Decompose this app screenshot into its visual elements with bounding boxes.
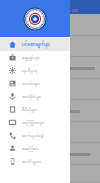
button[interactable]: အသံဖိုင်များ [0, 90, 70, 103]
staticText: ဈေးနှုန်းများ [22, 55, 41, 61]
button[interactable]: ပင်မစာမျက်နှာ [0, 38, 70, 51]
button[interactable]: အက်ပ်မျှဝေ [0, 155, 70, 168]
button[interactable]: Profile header [0, 0, 70, 37]
button[interactable]: သတင်းများ [0, 77, 70, 90]
staticText: သတင်းများ [22, 81, 41, 87]
staticText: အကြံပြုစာများ [22, 120, 45, 126]
button[interactable]: ဈေးနှုန်းများ [0, 51, 70, 64]
staticText: အကြောင်း [22, 146, 39, 152]
button[interactable]: အကြောင်း [0, 142, 70, 155]
staticText: ဗီဒီယိုများ [22, 107, 38, 113]
button[interactable]: အကြံပြုစာများ [0, 116, 70, 129]
staticText: အသံဖိုင်များ [22, 94, 42, 100]
button[interactable]: ဗီဒီယိုများ [0, 103, 70, 116]
button[interactable]: ဆက်သွယ်ရန် [0, 129, 70, 142]
button[interactable]: ရာသီဥတု [0, 64, 70, 77]
staticText: ရာသီဥတု [22, 68, 38, 74]
staticText: ပင်မစာမျက်နှာ [22, 40, 50, 50]
staticText: ဆက်သွယ်ရန် [22, 133, 44, 139]
staticText: အက်ပ်မျှဝေ [22, 159, 42, 165]
